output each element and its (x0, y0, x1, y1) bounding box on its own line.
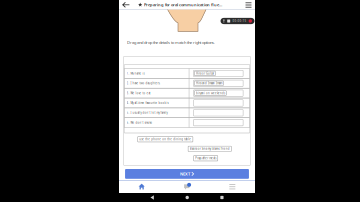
staticText: use the phone on the dining table (139, 137, 191, 141)
button[interactable]: NEXT (125, 169, 249, 179)
button[interactable]: More (210, 180, 255, 193)
staticText: Prays after meals (195, 156, 216, 160)
staticText: 5. I usually don't let my family (127, 111, 168, 115)
staticText: 4. My all-time favourite book is (127, 101, 169, 105)
staticText: 1. My name is (127, 72, 145, 75)
staticText: 2. I have two daughters. (127, 81, 161, 85)
button[interactable]: Menu (242, 0, 255, 9)
staticText: Hira or Gulzar (196, 72, 214, 75)
staticText: Basira or Sina my Islamic friend (190, 147, 230, 150)
staticText: Preparing for oral communication flue… (144, 2, 222, 7)
staticText: 6. We don't smoke (127, 121, 153, 124)
staticText: biryani on weekends (196, 91, 225, 95)
staticText: Drag and drop the details to match the r… (127, 40, 215, 45)
staticText: Hira and Imaan Imam (196, 81, 222, 85)
staticText: 00:00:15 (232, 19, 246, 23)
button[interactable]: Back (119, 0, 133, 9)
staticText: 3. We love to eat (127, 91, 151, 95)
button[interactable]: Messages (164, 180, 210, 193)
staticText: NEXT (180, 171, 190, 176)
button[interactable]: Home (119, 180, 164, 193)
